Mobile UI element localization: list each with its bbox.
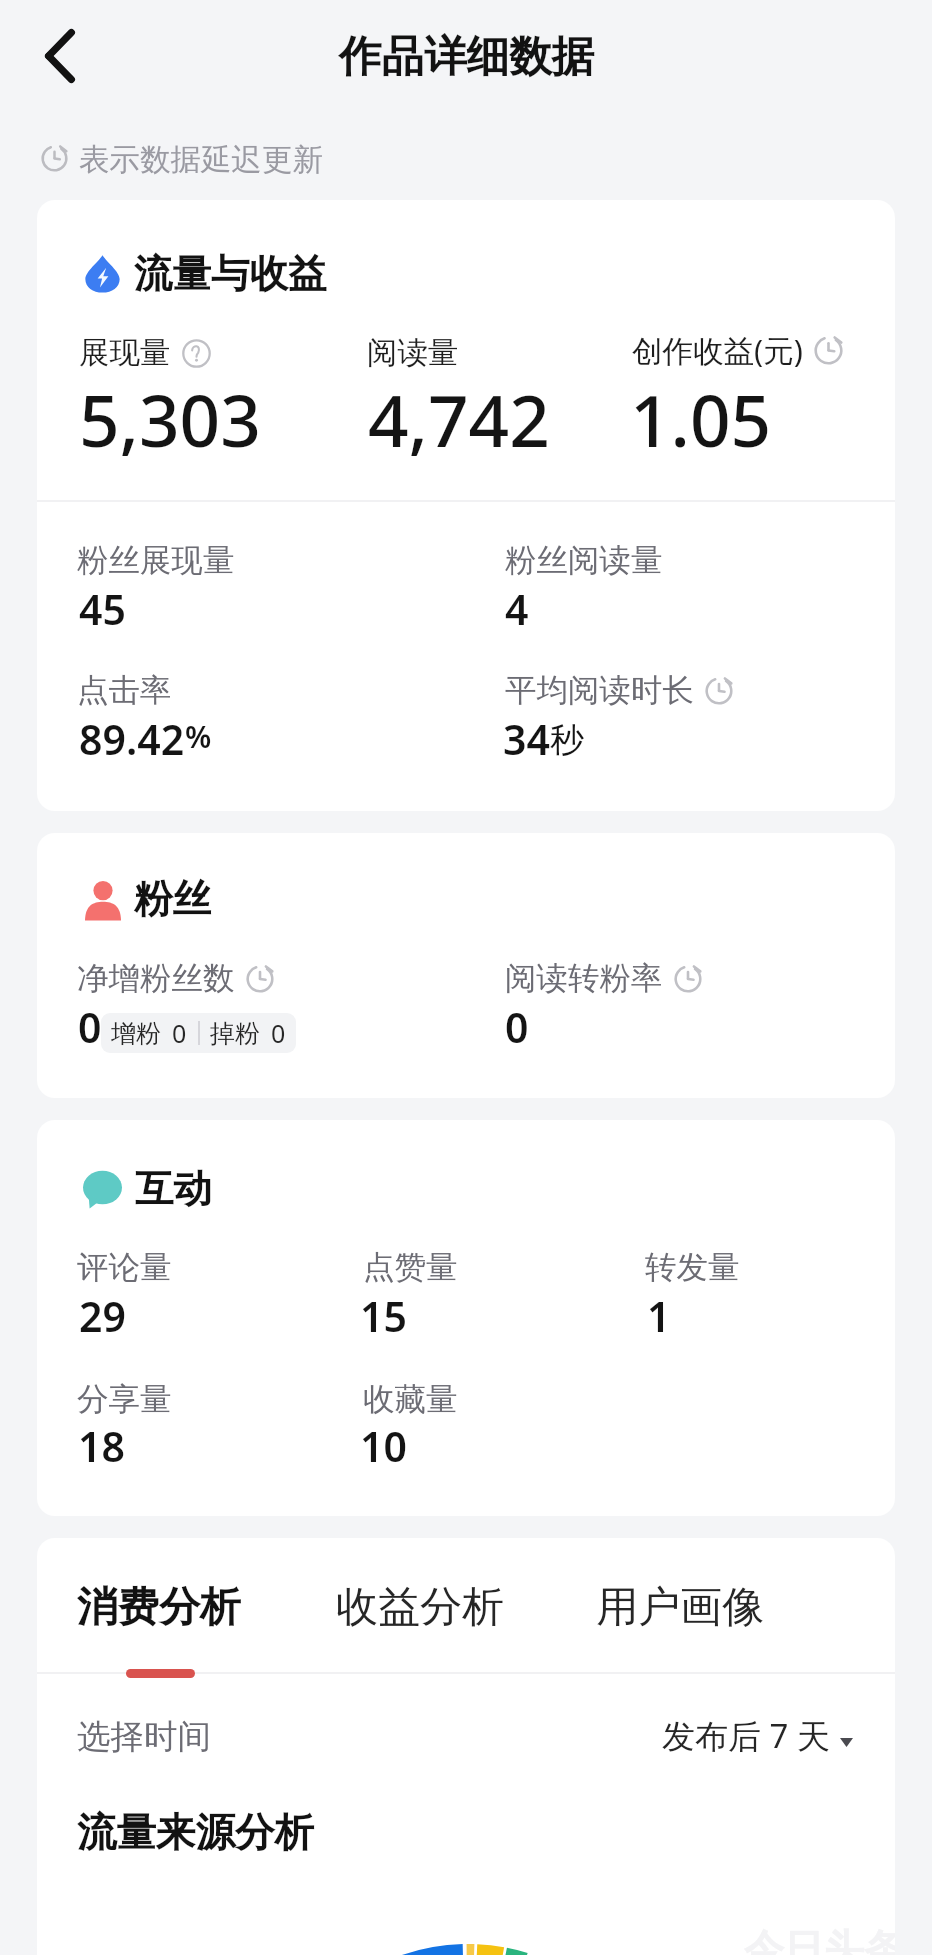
staticText: 89.42 bbox=[79, 711, 185, 767]
staticText: 34 bbox=[503, 711, 550, 767]
staticText: 掉粉 bbox=[210, 1018, 260, 1049]
staticText: 发布后 7 天 bbox=[662, 1713, 831, 1758]
staticText: 增粉 bbox=[111, 1018, 161, 1049]
staticText: 今日头条 bbox=[744, 1924, 895, 1955]
staticText: 粉丝展现量 bbox=[77, 541, 235, 581]
staticText: 点击率 bbox=[77, 671, 172, 711]
staticText: 收益分析 bbox=[336, 1581, 504, 1634]
staticText: 用户画像 bbox=[596, 1581, 764, 1634]
staticText: 秒 bbox=[550, 719, 584, 762]
staticText: 作品详细数据 bbox=[339, 30, 594, 84]
staticText: 选择时间 bbox=[77, 1716, 211, 1758]
button[interactable]: 发布后 7 天 bbox=[662, 1713, 853, 1758]
staticText: 29 bbox=[79, 1288, 126, 1344]
staticText: 表示数据延迟更新 bbox=[79, 141, 323, 179]
staticText: 1.05 bbox=[630, 371, 772, 468]
staticText: 粉丝 bbox=[134, 875, 211, 924]
staticText: % bbox=[185, 716, 212, 757]
staticText: 转发量 bbox=[645, 1248, 740, 1288]
staticText: 分享量 bbox=[77, 1380, 172, 1420]
staticText: 互动 bbox=[135, 1165, 212, 1214]
staticText: 点赞量 bbox=[363, 1248, 458, 1288]
staticText: 5,303 bbox=[79, 371, 261, 468]
button[interactable]: 用户画像 bbox=[596, 1581, 764, 1634]
staticText: 收藏量 bbox=[363, 1380, 458, 1420]
staticText: 4 bbox=[505, 581, 529, 637]
staticText: 45 bbox=[79, 581, 126, 637]
staticText: 流量来源分析 bbox=[77, 1808, 314, 1858]
staticText: 展现量 bbox=[79, 334, 171, 372]
button[interactable]: Back bbox=[20, 20, 100, 92]
staticText: 阅读转粉率 bbox=[505, 959, 663, 999]
staticText: 4,742 bbox=[368, 371, 550, 468]
staticText: 18 bbox=[78, 1418, 125, 1474]
staticText: 净增粉丝数 bbox=[77, 959, 235, 999]
staticText: 15 bbox=[360, 1288, 407, 1344]
staticText: 0 bbox=[271, 1016, 286, 1050]
staticText: 10 bbox=[360, 1418, 407, 1474]
staticText: 0 bbox=[78, 999, 102, 1055]
staticText: 粉丝阅读量 bbox=[505, 541, 663, 581]
button[interactable]: 收益分析 bbox=[336, 1581, 504, 1634]
staticText: 流量与收益 bbox=[134, 250, 327, 299]
staticText: 阅读量 bbox=[367, 334, 459, 372]
staticText: 评论量 bbox=[77, 1248, 172, 1288]
staticText: 0 bbox=[505, 999, 529, 1055]
staticText: 创作收益(元) bbox=[632, 329, 803, 371]
button[interactable]: 消费分析 bbox=[77, 1582, 241, 1634]
staticText: 平均阅读时长 bbox=[505, 671, 694, 711]
staticText: 0 bbox=[172, 1016, 187, 1050]
staticText: 1 bbox=[647, 1288, 671, 1344]
staticText: 消费分析 bbox=[77, 1582, 241, 1634]
